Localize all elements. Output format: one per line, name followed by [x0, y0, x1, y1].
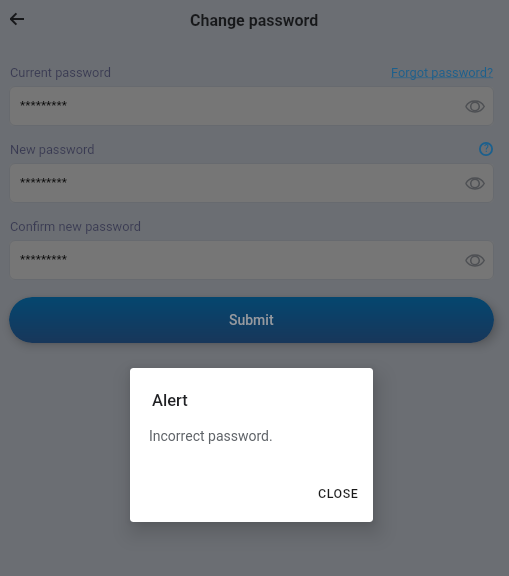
button[interactable]: ********* [9, 86, 494, 126]
button[interactable]: Show password [463, 248, 487, 272]
button[interactable]: CLOSE [311, 482, 365, 504]
staticText: Current password [10, 65, 111, 80]
staticText: Submit [229, 312, 274, 328]
button[interactable]: ********* [9, 240, 494, 280]
staticText: Incorrect password. [149, 428, 273, 444]
staticText: ? [484, 143, 489, 155]
staticText: Confirm new password [10, 219, 141, 234]
staticText: ********* [20, 99, 68, 112]
staticText: ********* [20, 253, 68, 266]
staticText: Change password [190, 11, 319, 30]
button[interactable]: Password requirements help [478, 141, 494, 157]
button[interactable]: Submit [9, 297, 494, 343]
button[interactable]: ********* [9, 163, 494, 203]
button[interactable]: Back [2, 5, 30, 33]
staticText: CLOSE [318, 486, 359, 501]
staticText: New password [10, 142, 95, 157]
staticText: ********* [20, 176, 68, 189]
button[interactable]: Show password [463, 94, 487, 118]
button[interactable]: Show password [463, 171, 487, 195]
staticText: Alert [152, 391, 188, 410]
button[interactable]: Forgot password? [391, 65, 494, 80]
